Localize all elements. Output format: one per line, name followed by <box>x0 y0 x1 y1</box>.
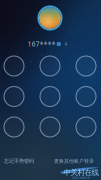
button[interactable]: 更换其他账户登录 <box>54 158 94 164</box>
button[interactable]: Pattern dot 1 <box>4 56 24 76</box>
staticText: 忘记手势密码 <box>4 158 34 164</box>
button[interactable]: Pattern dot 5 <box>40 86 60 106</box>
button[interactable]: Pattern dot 7 <box>4 117 24 137</box>
staticText: 中关村在线 <box>63 168 98 177</box>
button[interactable]: Pattern dot 9 <box>76 117 96 137</box>
button[interactable]: Pattern dot 3 <box>76 56 96 76</box>
staticText: 167**** <box>28 40 56 48</box>
staticText: zol.com.cn <box>72 175 90 180</box>
button[interactable]: Pattern dot 2 <box>40 56 60 76</box>
staticText: 4 <box>64 40 67 48</box>
button[interactable]: Pattern dot 8 <box>40 117 60 137</box>
button[interactable]: 忘记手势密码 <box>4 158 34 164</box>
button[interactable]: Pattern dot 6 <box>76 86 96 106</box>
staticText: 更换其他账户登录 <box>54 158 94 164</box>
button[interactable]: Pattern dot 4 <box>4 86 24 106</box>
